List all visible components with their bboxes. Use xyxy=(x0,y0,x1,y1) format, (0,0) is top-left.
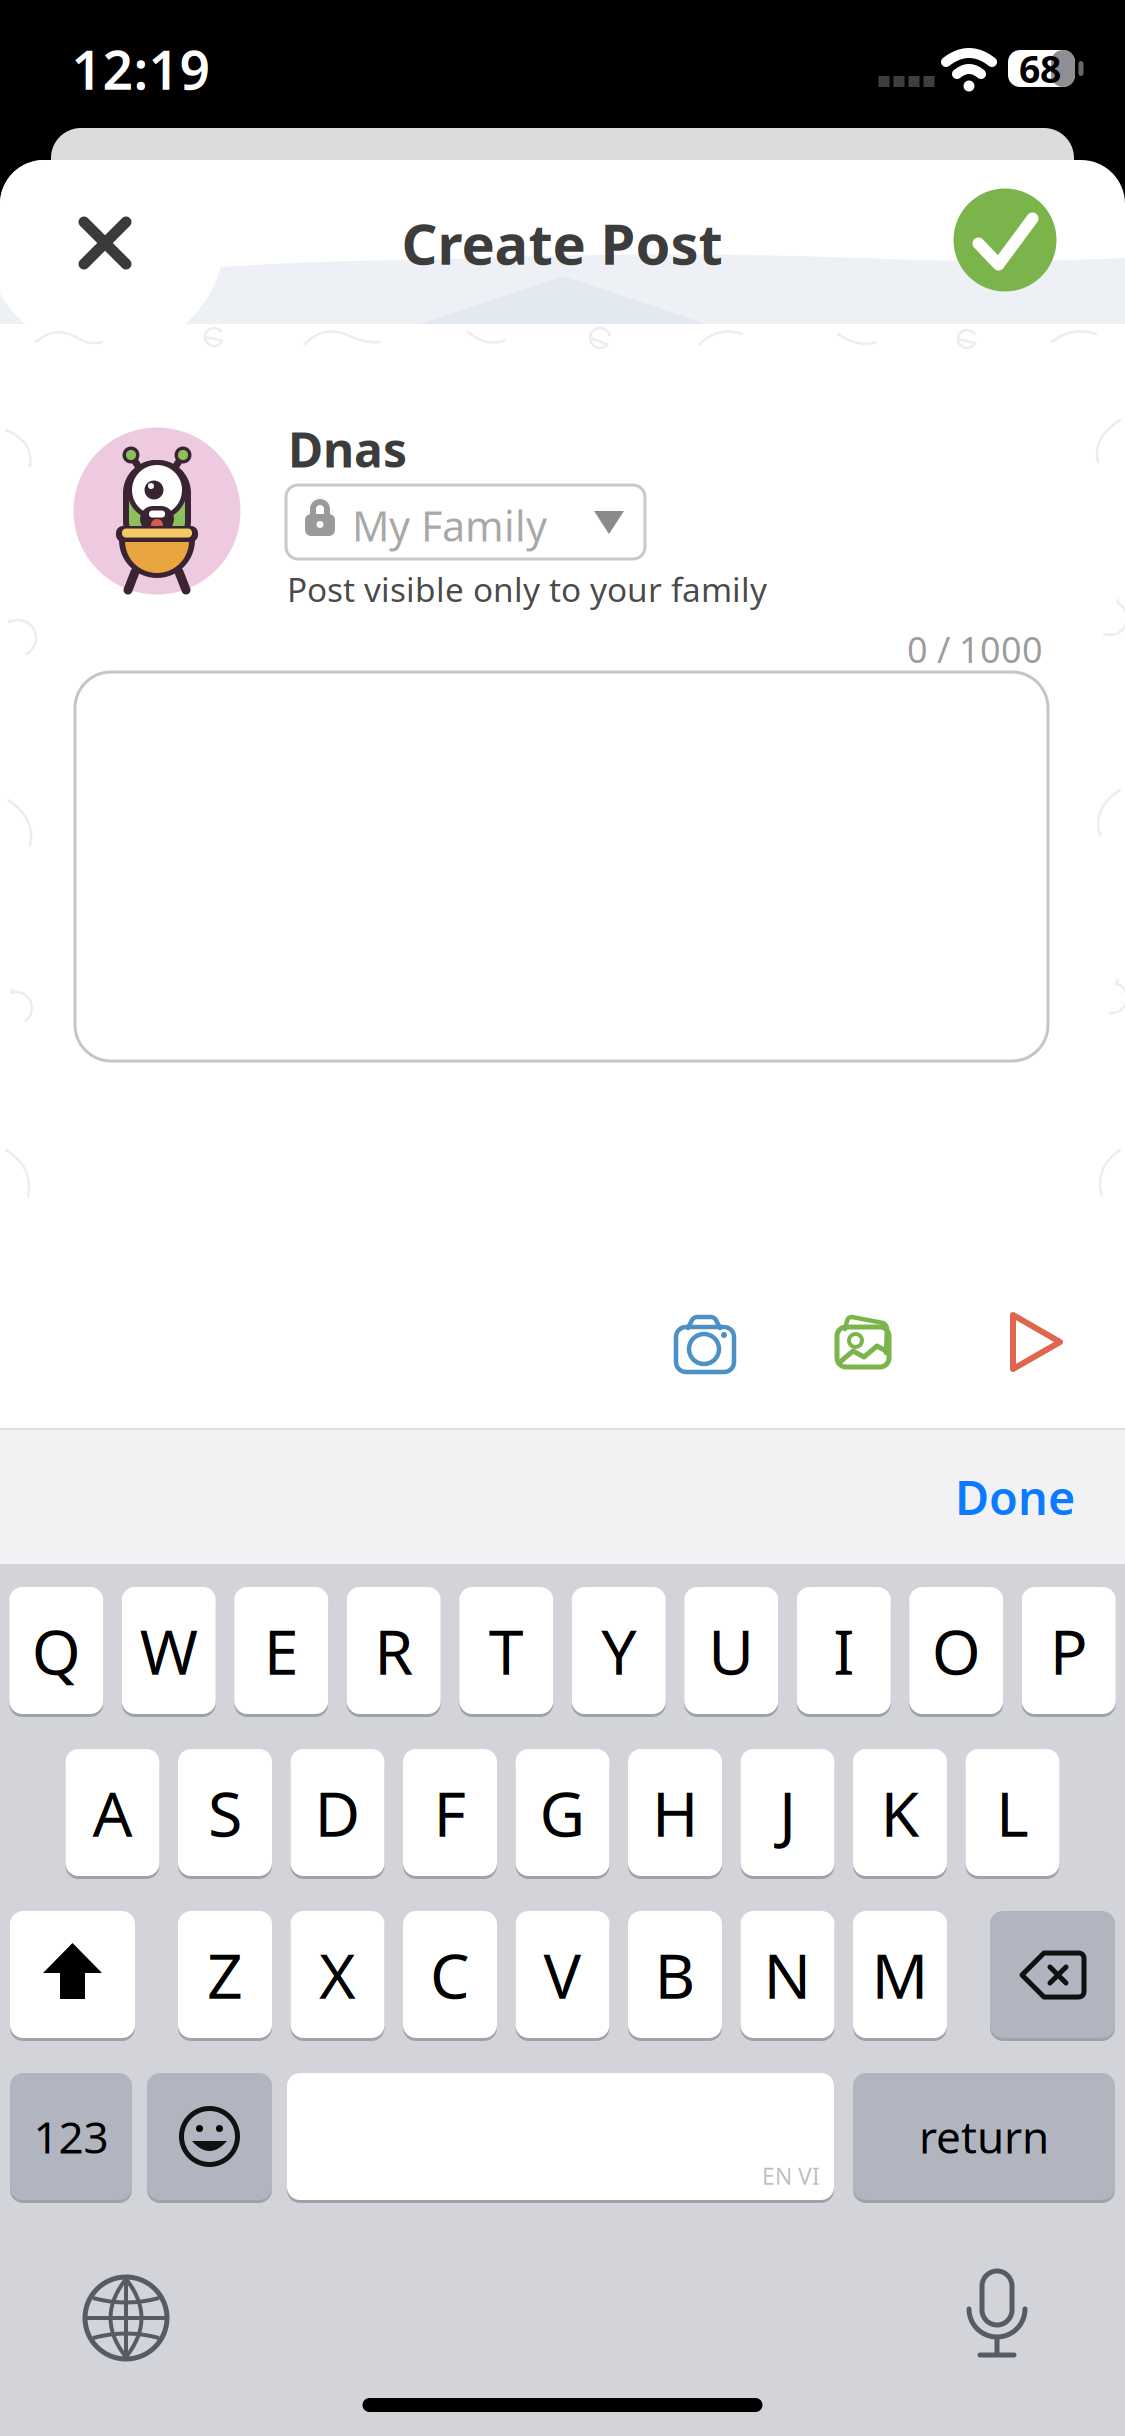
staticText: Z xyxy=(207,1933,243,2016)
staticText: Dnas xyxy=(288,417,407,481)
button[interactable] xyxy=(10,1911,135,2038)
button[interactable]: J xyxy=(740,1749,834,1876)
button[interactable]: EN VI xyxy=(287,2073,834,2200)
staticText: U xyxy=(708,1609,754,1692)
staticText: 68 xyxy=(1019,44,1061,93)
staticText: N xyxy=(763,1933,811,2016)
button[interactable] xyxy=(990,1911,1115,2038)
button[interactable]: B xyxy=(628,1911,722,2038)
button[interactable]: E xyxy=(234,1587,328,1714)
button[interactable]: Done xyxy=(955,1466,1075,1528)
staticText: S xyxy=(208,1771,242,1854)
staticText: O xyxy=(932,1609,981,1692)
staticText: X xyxy=(319,1933,356,2016)
staticText: G xyxy=(539,1771,585,1854)
staticText: E xyxy=(264,1609,299,1692)
button[interactable]: A xyxy=(65,1749,159,1876)
button[interactable]: D xyxy=(290,1749,384,1876)
staticText: Q xyxy=(32,1609,81,1692)
button[interactable]: X xyxy=(290,1911,384,2038)
staticText: My Family xyxy=(352,498,547,553)
button[interactable]: 123 xyxy=(10,2073,132,2200)
button[interactable]: Z xyxy=(178,1911,272,2038)
staticText: L xyxy=(996,1771,1029,1854)
staticText: 123 xyxy=(33,2107,108,2166)
staticText: C xyxy=(430,1933,470,2016)
button[interactable]: I xyxy=(797,1587,891,1714)
button[interactable]: P xyxy=(1022,1587,1116,1714)
button[interactable]: F xyxy=(403,1749,497,1876)
button[interactable]: W xyxy=(122,1587,216,1714)
button[interactable]: V xyxy=(515,1911,609,2038)
staticText: B xyxy=(654,1933,695,2016)
button[interactable] xyxy=(962,2271,1032,2359)
button[interactable]: My Family xyxy=(286,485,645,559)
staticText: W xyxy=(140,1609,198,1692)
button[interactable] xyxy=(147,2073,272,2200)
button[interactable]: S xyxy=(178,1749,272,1876)
button[interactable] xyxy=(672,1313,736,1373)
staticText: A xyxy=(92,1771,132,1854)
staticText: F xyxy=(433,1771,466,1854)
staticText: T xyxy=(489,1609,524,1692)
button[interactable]: G xyxy=(515,1749,609,1876)
staticText: 12:19 xyxy=(71,34,210,104)
button[interactable]: return xyxy=(853,2073,1115,2200)
staticText: I xyxy=(833,1609,854,1692)
staticText: K xyxy=(880,1771,919,1854)
button[interactable]: K xyxy=(853,1749,947,1876)
button[interactable]: Y xyxy=(572,1587,666,1714)
staticText: R xyxy=(374,1609,413,1692)
button[interactable]: T xyxy=(459,1587,553,1714)
staticText: D xyxy=(314,1771,360,1854)
staticText: P xyxy=(1050,1609,1088,1692)
staticText: Post visible only to your family xyxy=(287,567,767,611)
button[interactable] xyxy=(837,1313,899,1371)
button[interactable]: U xyxy=(684,1587,778,1714)
button[interactable]: O xyxy=(909,1587,1003,1714)
button[interactable] xyxy=(1010,1312,1066,1372)
staticText: M xyxy=(871,1933,928,2016)
button[interactable]: L xyxy=(965,1749,1059,1876)
button[interactable] xyxy=(953,188,1056,291)
staticText: return xyxy=(919,2107,1049,2166)
button[interactable]: N xyxy=(740,1911,834,2038)
staticText: V xyxy=(543,1933,581,2016)
button[interactable]: H xyxy=(628,1749,722,1876)
staticText: Done xyxy=(955,1466,1075,1528)
staticText: 0 / 1000 xyxy=(907,625,1043,673)
button[interactable] xyxy=(70,208,140,278)
staticText: EN VI xyxy=(762,2161,820,2191)
button[interactable]: C xyxy=(403,1911,497,2038)
button[interactable]: M xyxy=(853,1911,947,2038)
button[interactable]: R xyxy=(347,1587,441,1714)
staticText: J xyxy=(779,1771,796,1854)
button[interactable] xyxy=(85,2277,167,2359)
button[interactable]: Q xyxy=(9,1587,103,1714)
staticText: Create Post xyxy=(401,206,722,280)
staticText: H xyxy=(652,1771,698,1854)
staticText: Y xyxy=(601,1609,636,1692)
